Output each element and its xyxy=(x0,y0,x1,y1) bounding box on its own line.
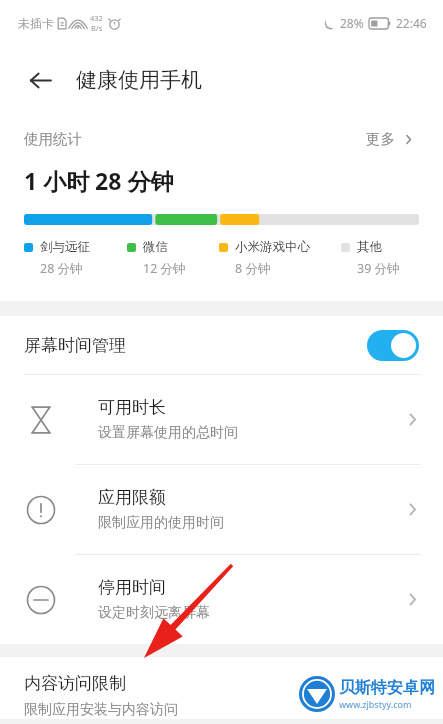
staticText: 限制应用安装与内容访问 xyxy=(24,701,178,719)
staticText: 贝斯特安卓网 xyxy=(339,678,435,698)
staticText: 其他 xyxy=(357,239,382,255)
button[interactable]: 可用时长 xyxy=(0,375,443,465)
button[interactable]: 屏幕时间管理开关 xyxy=(367,330,419,361)
staticText: 39 分钟 xyxy=(357,260,400,277)
staticText: www.zjbstyy.com xyxy=(339,698,425,710)
staticText: 28 分钟 xyxy=(40,260,83,277)
staticText: 微信 xyxy=(143,239,168,255)
button[interactable]: 屏幕时间管理 xyxy=(0,316,443,374)
staticText: 应用限额 xyxy=(98,487,166,508)
button[interactable]: 应用限额 xyxy=(0,465,443,555)
staticText: 28% xyxy=(340,15,364,31)
staticText: B/s xyxy=(91,23,103,33)
staticText: 剑与远征 xyxy=(40,239,90,255)
staticText: 1 小时 28 分钟 xyxy=(24,165,174,196)
staticText: 内容访问限制 xyxy=(24,673,126,694)
staticText: 22:46 xyxy=(396,15,427,31)
staticText: 12 分钟 xyxy=(143,260,186,277)
staticText: 小米游戏中心 xyxy=(235,239,310,255)
button[interactable]: 停用时间 xyxy=(0,555,443,644)
button[interactable]: 更多 xyxy=(362,126,419,152)
staticText: 未插卡 xyxy=(18,16,54,31)
staticText: 可用时长 xyxy=(98,397,166,418)
staticText: 限制应用的使用时间 xyxy=(98,514,224,532)
staticText: 更多 xyxy=(366,130,395,148)
staticText: 432 xyxy=(90,13,103,23)
staticText: 设置屏幕使用的总时间 xyxy=(98,424,238,442)
staticText: 健康使用手机 xyxy=(76,67,202,93)
staticText: 使用统计 xyxy=(24,130,82,148)
staticText: 屏幕时间管理 xyxy=(24,335,126,356)
button[interactable]: 内容访问限制 xyxy=(0,657,443,719)
button[interactable]: 返回 xyxy=(18,58,62,102)
staticText: 设定时刻远离屏幕 xyxy=(98,604,210,622)
staticText: 停用时间 xyxy=(98,577,166,598)
staticText: 8 分钟 xyxy=(235,260,271,277)
